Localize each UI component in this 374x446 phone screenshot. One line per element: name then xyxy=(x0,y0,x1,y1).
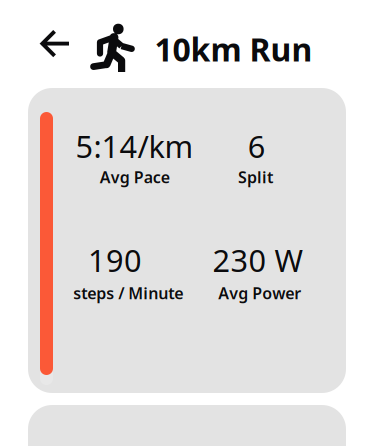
button[interactable]: Back xyxy=(32,22,76,66)
staticText: Split xyxy=(238,166,273,188)
staticText: Avg Pace xyxy=(100,166,170,188)
staticText: 190 xyxy=(88,240,142,280)
staticText: 10km Run xyxy=(154,28,312,70)
staticText: 230 W xyxy=(213,240,304,280)
staticText: 6 xyxy=(248,126,266,166)
staticText: steps / Minute xyxy=(73,282,183,304)
staticText: Avg Power xyxy=(218,282,301,304)
staticText: 5:14/km xyxy=(76,126,194,166)
